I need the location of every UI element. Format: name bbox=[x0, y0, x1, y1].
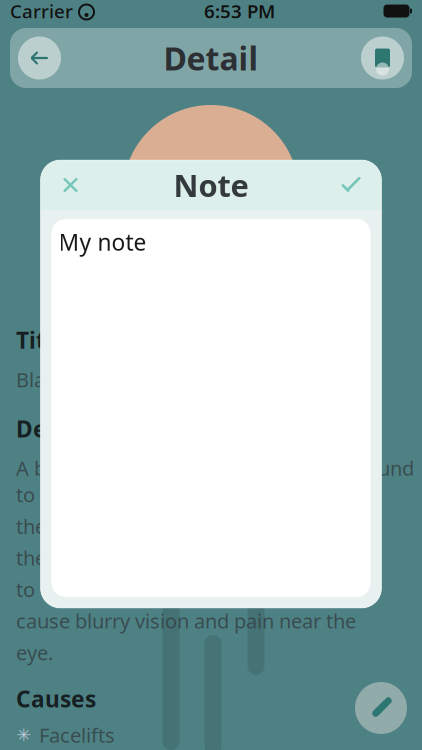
staticText: Details bbox=[16, 414, 96, 444]
button[interactable]: Save note bbox=[331, 165, 371, 205]
staticText: eye. bbox=[16, 639, 53, 666]
button[interactable]: Edit note bbox=[355, 682, 407, 734]
staticText: My note bbox=[58, 227, 146, 257]
staticText: Detail bbox=[163, 37, 258, 79]
staticText: cause blurry vision and pain near the bbox=[16, 608, 356, 634]
button[interactable]: Close bbox=[50, 165, 90, 205]
button[interactable]: Bookmark bbox=[361, 36, 404, 79]
staticText: Title bbox=[16, 325, 67, 355]
staticText: Carrier bbox=[10, 0, 73, 23]
staticText: ✳︎ bbox=[16, 725, 31, 745]
staticText: Note bbox=[173, 165, 248, 205]
staticText: to the pooling of blood. It may also bbox=[16, 576, 339, 603]
staticText: Facelifts bbox=[39, 722, 115, 748]
staticText: Black eye bbox=[16, 366, 103, 393]
button[interactable]: Back bbox=[18, 36, 61, 79]
staticText: Causes bbox=[16, 684, 96, 714]
staticText: the face. Discoloration occurs due bbox=[16, 544, 331, 571]
staticText: the eye, commonly caused by a blow to bbox=[16, 513, 380, 539]
staticText: A black eye is bruising and swelling aro… bbox=[16, 455, 414, 508]
staticText: 6:53 PM bbox=[204, 0, 275, 23]
